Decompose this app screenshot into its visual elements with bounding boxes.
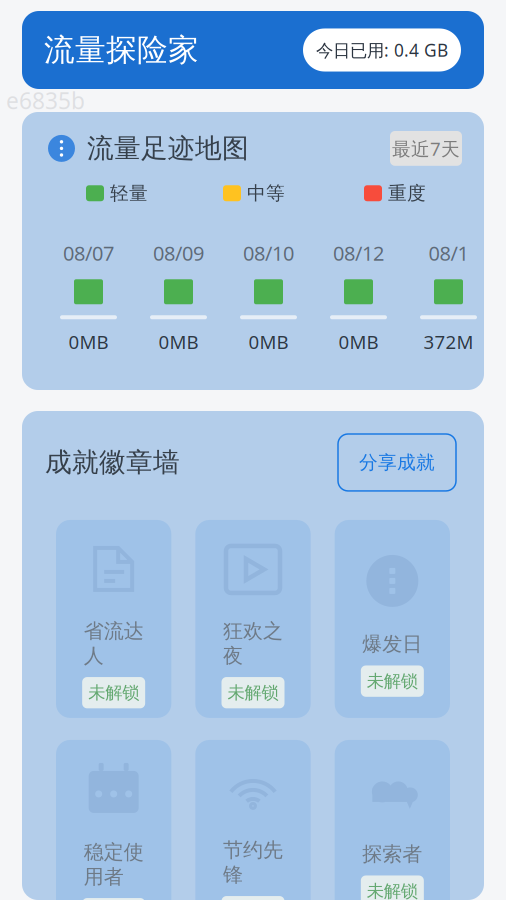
button[interactable]: 稳定使用者	[56, 740, 171, 900]
staticText: 流量探险家	[44, 31, 199, 69]
staticText: 未解锁	[88, 682, 139, 703]
staticText: 流量足迹地图	[87, 132, 249, 165]
staticText: 爆发日	[362, 632, 422, 656]
button[interactable]: 探索者	[335, 740, 450, 900]
staticText: 08/09	[153, 240, 204, 266]
staticText: 成就徽章墙	[45, 446, 180, 479]
staticText: 08/10	[243, 240, 294, 266]
staticText: 最近7天	[392, 136, 460, 161]
staticText: 0MB	[248, 329, 288, 354]
button[interactable]: 爆发日	[335, 520, 450, 718]
staticText: 372M	[423, 329, 473, 354]
staticText: 中等	[247, 182, 285, 205]
staticText: 08/12	[333, 240, 384, 266]
staticText: 今日已用: 0.4 GB	[316, 38, 448, 61]
button[interactable]: 狂欢之夜	[195, 520, 311, 718]
staticText: 省流达人	[84, 619, 144, 668]
staticText: 稳定使用者	[84, 840, 144, 889]
button[interactable]: 节约先锋	[195, 740, 311, 900]
staticText: 08/1	[428, 240, 468, 266]
staticText: 未解锁	[227, 682, 278, 703]
button[interactable]: 省流达人	[56, 520, 171, 718]
staticText: 0MB	[158, 329, 198, 354]
staticText: 轻量	[110, 182, 148, 205]
staticText: 节约先锋	[223, 838, 283, 887]
staticText: 0MB	[338, 329, 378, 354]
staticText: 0MB	[68, 329, 108, 354]
staticText: 08/07	[63, 240, 114, 266]
staticText: 分享成就	[359, 451, 435, 474]
staticText: 探索者	[362, 842, 422, 866]
staticText: e6835b	[6, 85, 85, 115]
staticText: 未解锁	[367, 880, 418, 900]
button[interactable]: 分享成就	[338, 434, 456, 491]
staticText: 狂欢之夜	[223, 619, 283, 668]
staticText: 未解锁	[367, 670, 418, 692]
staticText: 重度	[388, 182, 426, 205]
